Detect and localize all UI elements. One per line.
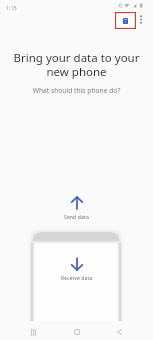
button[interactable]: Recents — [22, 324, 44, 340]
staticText: Send data — [64, 214, 89, 221]
staticText: Bring your data to your new phone — [0, 50, 153, 80]
button[interactable]: Home — [66, 324, 88, 340]
button[interactable]: Smart Switch — [115, 12, 136, 29]
staticText: What should this phone do? — [0, 86, 153, 95]
button[interactable]: More options — [137, 15, 145, 24]
button[interactable]: Back — [108, 324, 130, 340]
button[interactable]: Receive data — [0, 257, 153, 282]
staticText: 1:15 — [6, 4, 17, 11]
button[interactable]: Send data — [0, 196, 153, 221]
staticText: Receive data — [61, 275, 93, 282]
